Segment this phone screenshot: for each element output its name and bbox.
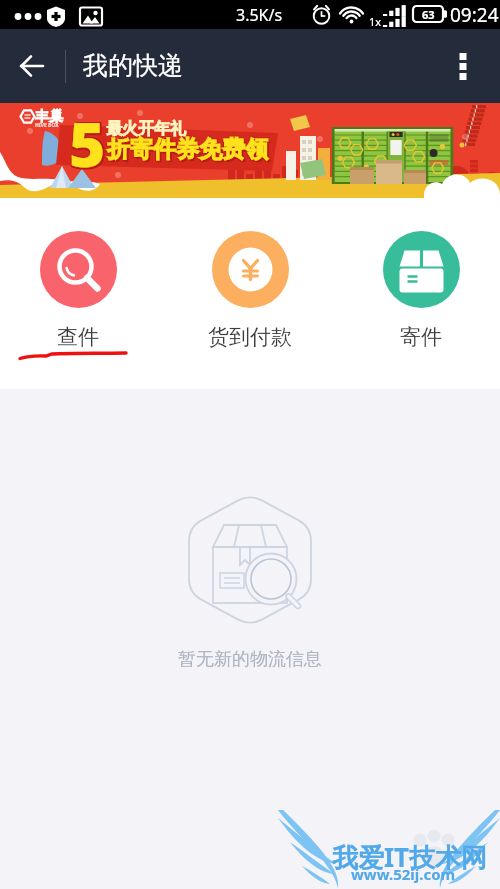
staticText: www.52ij.com — [351, 864, 456, 884]
staticText: 5 — [68, 103, 105, 187]
button[interactable]: 寄件 — [356, 198, 486, 350]
staticText: 我的快递 — [83, 50, 183, 81]
staticText: 5 — [69, 101, 106, 185]
staticText: 折寄件券免费领 — [107, 135, 268, 164]
staticText: 5 — [71, 103, 108, 187]
staticText: 丰巢 — [35, 108, 63, 126]
button[interactable]: 查件 — [13, 198, 143, 350]
staticText: 货到付款 — [208, 324, 292, 350]
staticText: 最火开年礼 — [106, 119, 186, 139]
staticText: 09:24 — [450, 2, 499, 28]
staticText: 1x — [369, 14, 382, 29]
staticText: 5 — [71, 100, 108, 184]
button[interactable]: More options — [439, 42, 487, 90]
staticText: 3.5K/s — [236, 4, 283, 26]
button[interactable]: 货到付款 — [185, 198, 315, 350]
staticText: 暂无新的物流信息 — [178, 648, 322, 671]
staticText: 折寄件券免费领 — [106, 136, 267, 165]
button[interactable]: Back — [6, 40, 58, 92]
button[interactable]: 5 — [0, 103, 500, 198]
staticText: 63 — [422, 7, 435, 22]
staticText: 折寄件券免费领 — [109, 137, 270, 166]
staticText: 寄件 — [400, 324, 442, 350]
staticText: 折寄件券免费领 — [108, 134, 269, 163]
staticText: 我爱IT技术网 — [332, 839, 488, 875]
staticText: HIVE BOX — [35, 122, 59, 129]
staticText: 查件 — [57, 324, 99, 350]
